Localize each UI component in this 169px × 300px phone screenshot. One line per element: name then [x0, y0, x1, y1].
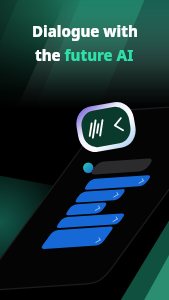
staticText: the future AI [35, 45, 134, 65]
staticText: Dialogue with [32, 21, 138, 41]
button[interactable]: Open AI assistant [73, 99, 138, 155]
